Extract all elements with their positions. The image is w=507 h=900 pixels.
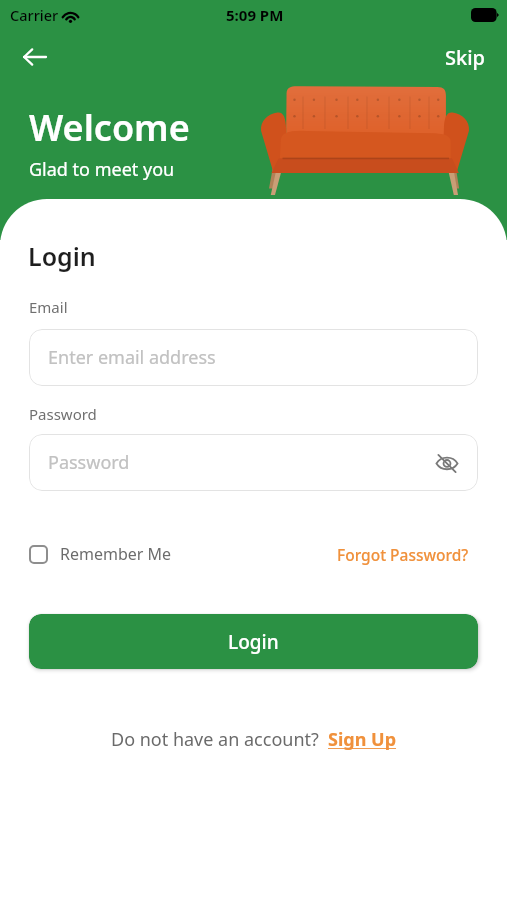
button[interactable]: Forgot Password? [337,544,469,565]
staticText: Enter email address [48,345,216,370]
staticText: Login [228,629,279,655]
button[interactable]: Skip [439,40,491,75]
button[interactable]: Enter email address [29,329,478,386]
button[interactable]: Password [29,434,478,491]
button[interactable]: Login [29,614,478,669]
staticText: Carrier [10,5,59,25]
staticText: Login [28,239,96,273]
button[interactable]: Remember Me [29,543,172,565]
staticText: 5:09 PM [226,5,284,25]
button[interactable]: Sign Up [328,727,397,752]
button[interactable]: Back [18,41,50,73]
button[interactable]: Show password [432,448,462,478]
staticText: Welcome [29,103,190,152]
staticText: Remember Me [60,543,172,565]
staticText: Password [29,404,97,424]
staticText: Glad to meet you [29,157,175,182]
staticText: Email [29,297,68,317]
staticText: Skip [445,44,485,71]
staticText: Forgot Password? [337,544,469,565]
staticText: Password [48,450,130,475]
staticText: Do not have an account? [111,727,319,752]
staticText: Sign Up [328,727,397,752]
